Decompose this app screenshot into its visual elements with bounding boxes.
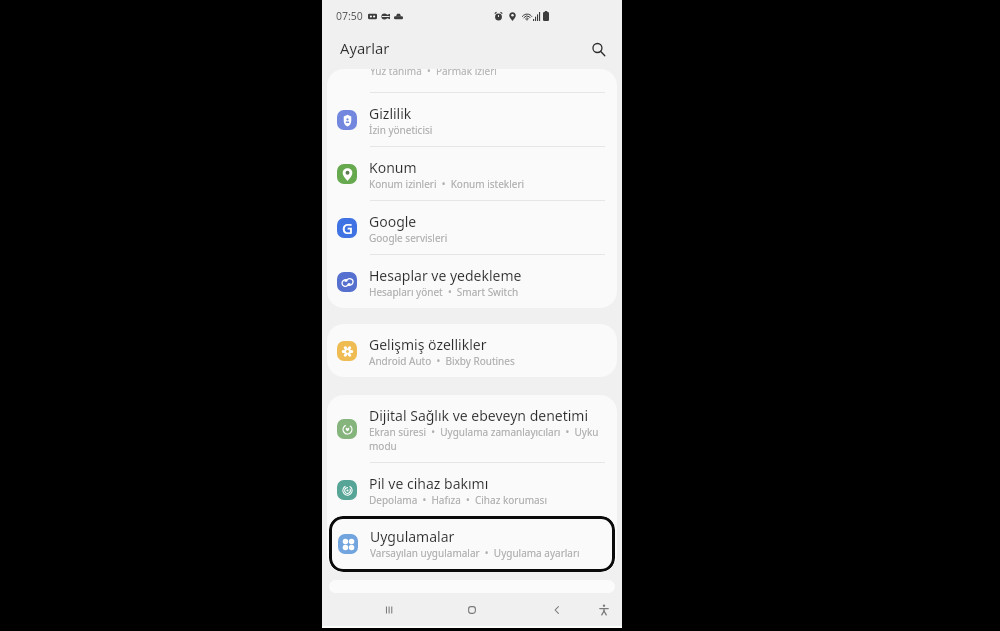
staticText: Konum izinleri • Konum istekleri <box>369 177 525 191</box>
staticText: İzin yöneticisi <box>369 123 433 137</box>
button[interactable]: Home <box>460 598 484 622</box>
staticText: Ekran süresi • Uygulama zamanlayıcıları … <box>369 425 605 453</box>
staticText: Konum <box>369 158 417 177</box>
staticText: Pil ve cihaz bakımı <box>369 474 489 493</box>
staticText: Google servisleri <box>369 231 448 245</box>
button[interactable]: Konum <box>327 147 617 200</box>
staticText: Google <box>369 212 417 231</box>
staticText: Android Auto • Bixby Routines <box>369 354 515 368</box>
button[interactable]: Back <box>545 598 569 622</box>
button[interactable]: Hesaplar ve yedekleme <box>327 255 617 308</box>
staticText: Depolama • Hafıza • Cihaz koruması <box>369 493 547 507</box>
button[interactable]: Uygulamalar <box>329 516 615 572</box>
staticText: Yüz tanıma • Parmak izleri <box>370 69 497 78</box>
button[interactable]: Gelişmiş özellikler <box>327 324 617 377</box>
button[interactable]: Dijital Sağlık ve ebeveyn denetimi <box>327 395 617 462</box>
staticText: Ayarlar <box>340 38 390 58</box>
staticText: Hesaplar ve yedekleme <box>369 266 522 285</box>
button[interactable]: Accessibility <box>592 598 616 622</box>
button[interactable]: Search <box>586 37 610 61</box>
button[interactable]: G <box>327 201 617 254</box>
button[interactable]: Yüz tanıma • Parmak izleri <box>327 69 617 92</box>
button[interactable]: Recent apps <box>377 598 401 622</box>
button[interactable]: Gizlilik <box>327 93 617 146</box>
staticText: 07:50 <box>336 9 363 23</box>
staticText: Gizlilik <box>369 104 412 123</box>
staticText: Varsayılan uygulamalar • Uygulama ayarla… <box>370 546 580 560</box>
staticText: Uygulamalar <box>370 527 455 546</box>
staticText: Hesapları yönet • Smart Switch <box>369 285 519 299</box>
staticText: G <box>342 218 353 238</box>
button[interactable]: Pil ve cihaz bakımı <box>327 463 617 516</box>
staticText: Gelişmiş özellikler <box>369 335 487 354</box>
staticText: Dijital Sağlık ve ebeveyn denetimi <box>369 406 589 425</box>
